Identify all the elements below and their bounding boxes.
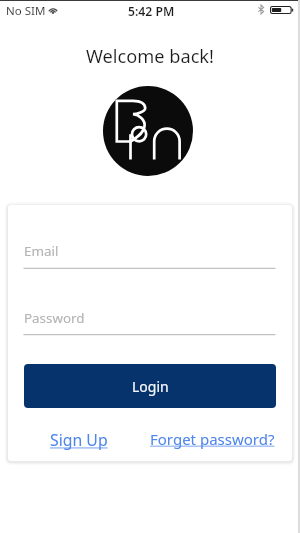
other: App logo (103, 86, 193, 176)
staticText: No SIM (6, 3, 46, 19)
button[interactable]: Sign Up (50, 429, 108, 451)
staticText: Login (132, 377, 169, 396)
staticText: Email (24, 242, 59, 260)
other: Bluetooth (258, 5, 264, 14)
other: Battery (270, 6, 294, 14)
other: Wi-Fi (48, 6, 58, 14)
staticText: Sign Up (50, 429, 108, 451)
staticText: 5:42 PM (128, 3, 175, 20)
staticText: Welcome back! (0, 44, 300, 69)
staticText: Forget password? (150, 429, 275, 449)
button[interactable]: Forget password? (150, 429, 275, 449)
button[interactable]: Login (24, 364, 276, 408)
staticText: Password (24, 309, 85, 327)
